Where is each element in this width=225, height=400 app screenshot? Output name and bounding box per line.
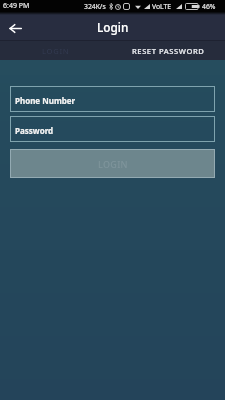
staticText: VoLTE <box>152 2 172 11</box>
button[interactable]: Phone Number <box>10 86 215 112</box>
staticText: LOGIN <box>98 158 128 170</box>
button[interactable]: LOGIN <box>10 149 215 178</box>
staticText: 324K/s <box>84 2 106 11</box>
button[interactable]: Password <box>10 116 215 142</box>
staticText: LOGIN <box>42 46 70 56</box>
staticText: Password <box>15 125 54 136</box>
staticText: Phone Number <box>15 95 76 106</box>
button[interactable]: Back <box>5 18 25 38</box>
staticText: 6:49 PM <box>3 1 30 11</box>
staticText: Login <box>97 19 129 35</box>
button[interactable]: RESET PASSWORD <box>112 41 225 60</box>
staticText: 46% <box>202 2 216 11</box>
staticText: RESET PASSWORD <box>132 46 205 56</box>
